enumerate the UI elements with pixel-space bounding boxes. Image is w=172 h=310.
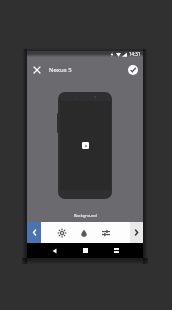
button[interactable]: Recents (110, 244, 123, 257)
button[interactable]: Done (124, 61, 141, 78)
staticText: 14:31 (129, 51, 141, 57)
button[interactable]: Saturation (73, 222, 95, 243)
button[interactable]: Brightness (51, 222, 73, 243)
button[interactable]: Close (30, 63, 44, 77)
button[interactable]: Tune (95, 222, 117, 243)
button[interactable]: Back (48, 244, 61, 257)
staticText: Nexus 5 (49, 66, 72, 74)
staticText: Background (74, 213, 97, 218)
button[interactable]: Previous (27, 222, 41, 243)
button[interactable]: Home (79, 244, 92, 257)
button[interactable]: Next (130, 222, 143, 243)
